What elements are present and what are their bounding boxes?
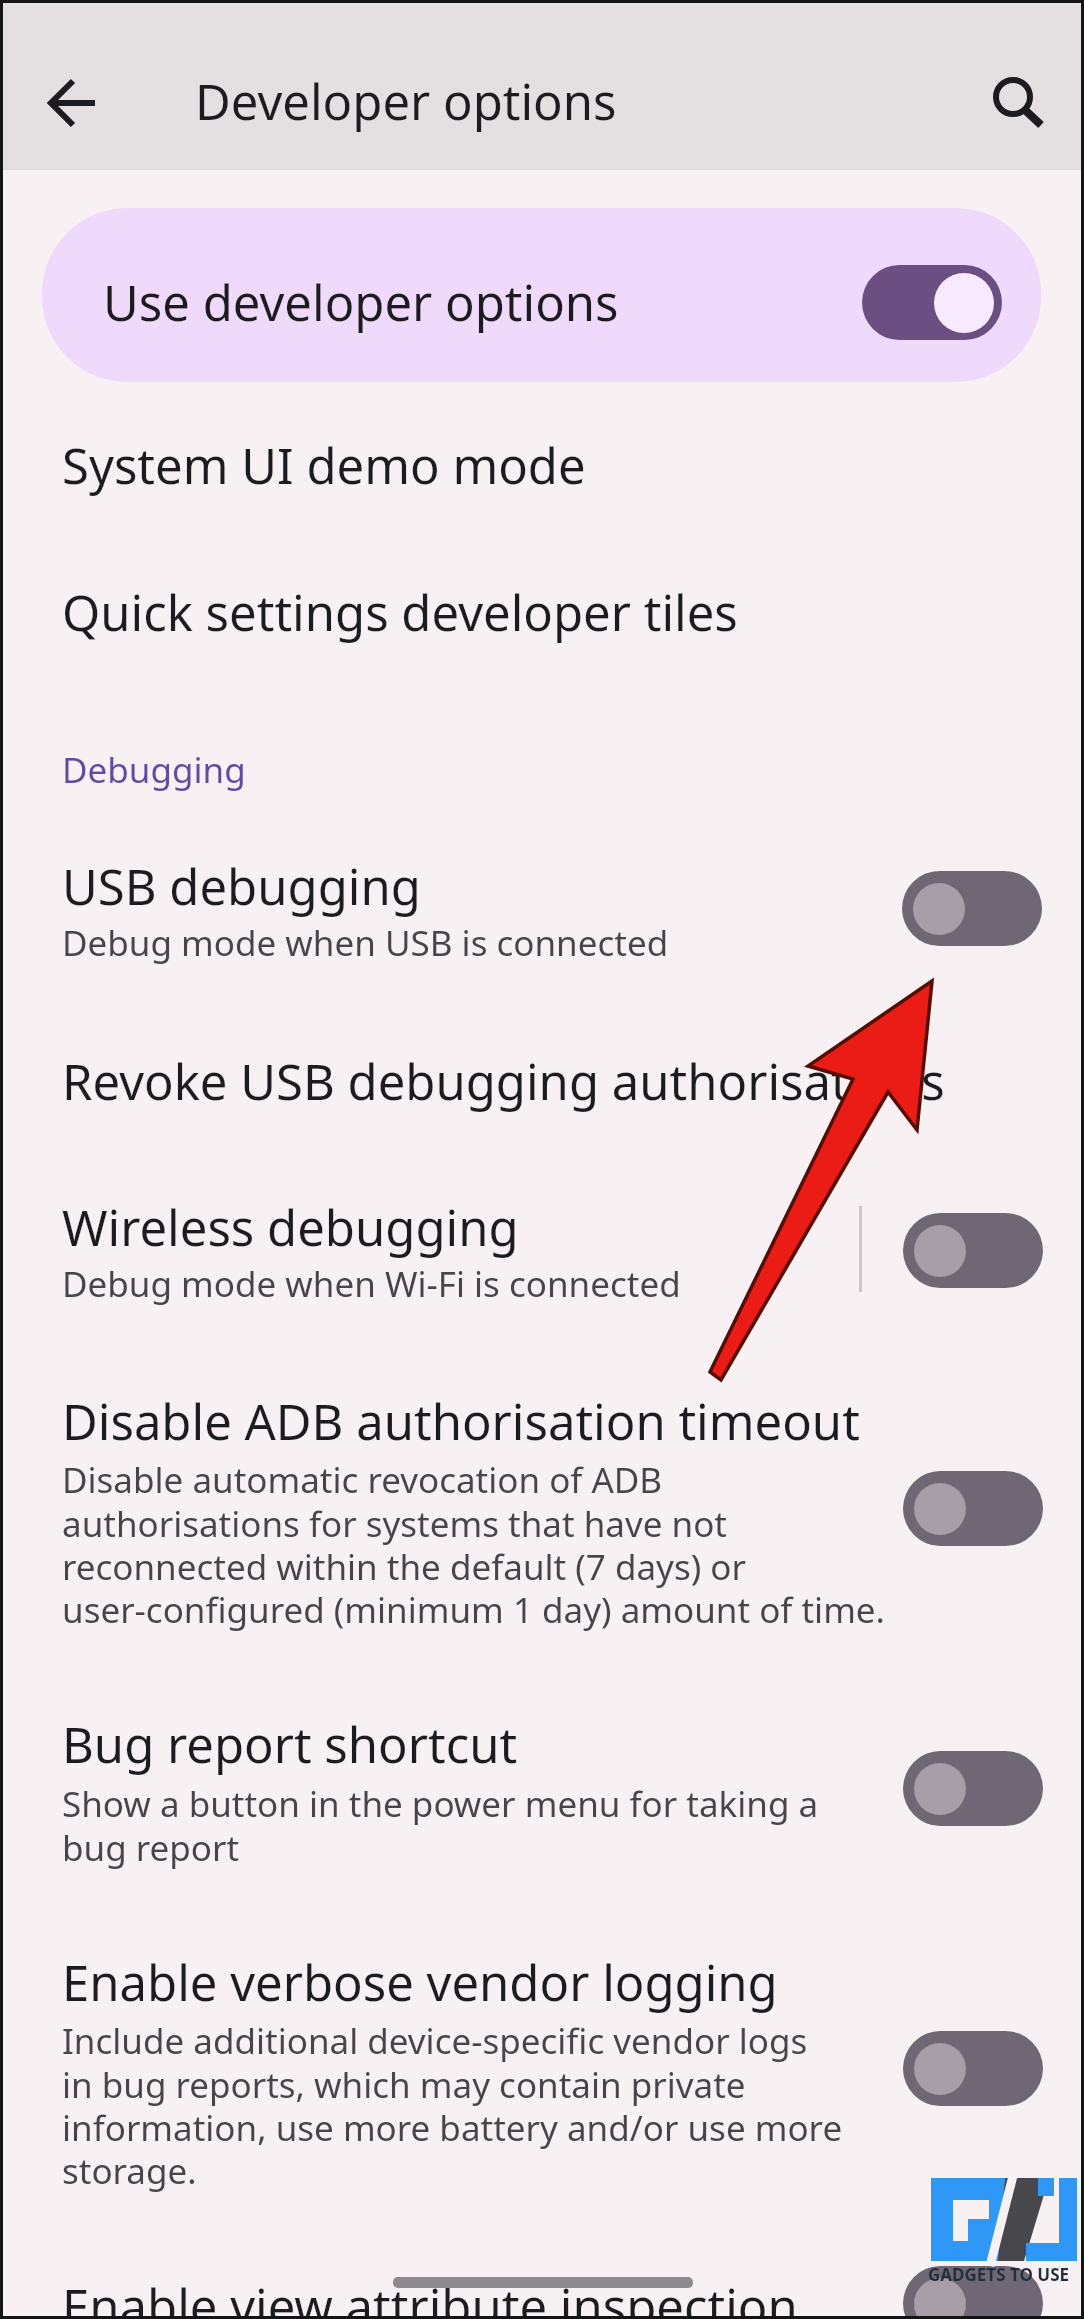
staticText: Debug mode when USB is connected	[62, 919, 669, 967]
button[interactable]	[0, 1915, 1084, 2200]
staticText: Debug mode when Wi-Fi is connected	[62, 1260, 681, 1308]
staticText: Revoke USB debugging authorisations	[62, 1048, 945, 1115]
staticText: Enable verbose vendor logging	[62, 1949, 778, 2016]
staticText: Show a button in the power menu for taki…	[62, 1780, 819, 1871]
staticText: Disable ADB authorisation timeout	[62, 1388, 860, 1455]
staticText: Debugging	[62, 746, 246, 794]
button[interactable]	[903, 2031, 1043, 2106]
button[interactable]	[903, 1471, 1043, 1546]
button[interactable]	[0, 2260, 1084, 2319]
button[interactable]	[0, 545, 1084, 685]
button[interactable]	[0, 1010, 1084, 1160]
staticText: Quick settings developer tiles	[62, 579, 738, 646]
button[interactable]	[0, 400, 1084, 540]
button[interactable]	[902, 871, 1042, 946]
button[interactable]	[0, 1685, 1084, 1885]
button[interactable]	[903, 1751, 1043, 1826]
button[interactable]	[960, 45, 1070, 155]
button[interactable]	[0, 1165, 1084, 1330]
staticText: GADGETS TO USE	[928, 2263, 1070, 2286]
button[interactable]	[0, 1355, 1084, 1635]
staticText: Developer options	[195, 68, 617, 135]
staticText: Bug report shortcut	[62, 1711, 518, 1778]
button[interactable]	[903, 2266, 1043, 2319]
staticText: Include additional device-specific vendo…	[62, 2017, 843, 2194]
staticText: Use developer options	[103, 269, 619, 336]
staticText: USB debugging	[62, 853, 421, 920]
button[interactable]	[903, 1213, 1043, 1288]
button[interactable]	[862, 265, 1002, 340]
staticText: System UI demo mode	[62, 432, 586, 499]
button[interactable]	[0, 825, 1084, 985]
staticText: Disable automatic revocation of ADB auth…	[62, 1456, 885, 1633]
staticText: Enable view attribute inspection	[62, 2273, 798, 2319]
staticText: Wireless debugging	[62, 1194, 519, 1261]
button[interactable]	[42, 208, 1041, 382]
button[interactable]	[0, 0, 170, 170]
